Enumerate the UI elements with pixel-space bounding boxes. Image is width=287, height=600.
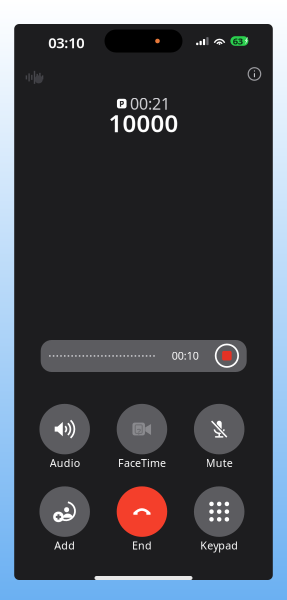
staticText: 10000: [108, 107, 178, 139]
staticText: Add: [54, 538, 75, 553]
button[interactable]: End: [117, 486, 167, 553]
button[interactable]: Audio: [39, 403, 90, 471]
staticText: Mute: [206, 456, 233, 470]
button[interactable]: Mute: [194, 403, 244, 471]
staticText: Keypad: [200, 538, 238, 553]
button[interactable]: Call details: [241, 61, 268, 87]
staticText: 00:10: [172, 349, 199, 363]
staticText: 03:10: [48, 33, 84, 52]
staticText: 00:21: [130, 93, 170, 114]
staticText: ?: [137, 425, 141, 437]
staticText: P: [119, 98, 124, 109]
button[interactable]: ?: [117, 403, 167, 471]
staticText: End: [132, 538, 152, 553]
staticText: Audio: [50, 456, 80, 470]
button[interactable]: Stop recording: [215, 344, 239, 368]
staticText: FaceTime: [118, 456, 166, 470]
button[interactable]: Keypad: [194, 486, 244, 553]
staticText: 63: [233, 35, 243, 47]
button[interactable]: Add: [39, 486, 90, 553]
